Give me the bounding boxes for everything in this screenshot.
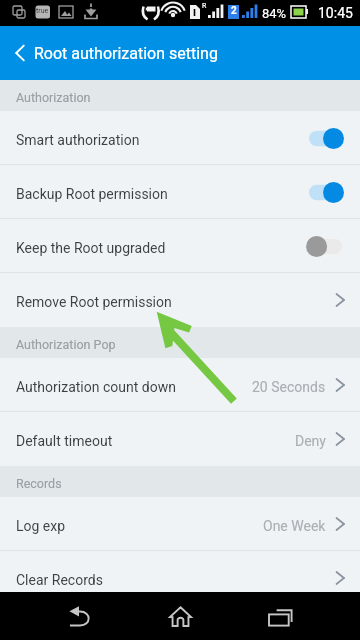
button[interactable]: Log exp [0, 497, 360, 551]
button[interactable]: Backup Root permission [0, 165, 360, 219]
staticText: 20 Seconds [252, 379, 326, 395]
staticText: true [36, 7, 49, 15]
staticText: Backup Root permission [16, 186, 168, 202]
staticText: Default timeout [16, 433, 113, 449]
staticText: Authorization Pop [16, 337, 116, 352]
button[interactable]: Recents [265, 592, 315, 640]
staticText: Log exp [16, 518, 66, 534]
staticText: 84% [262, 6, 287, 21]
staticText: Root authorization setting [34, 44, 218, 63]
staticText: Keep the Root upgraded [16, 240, 166, 256]
button[interactable]: Smart authorization [0, 111, 360, 165]
staticText: Deny [295, 433, 326, 449]
button[interactable]: Remove Root permission [0, 273, 360, 327]
button[interactable]: Home [150, 592, 210, 640]
staticText: 10:45 [318, 5, 353, 21]
button[interactable]: Back [0, 26, 34, 80]
button[interactable]: Keep the Root upgraded [0, 219, 360, 273]
staticText: R [202, 2, 207, 10]
staticText: Clear Records [16, 572, 103, 588]
button[interactable]: Authorization count down [0, 358, 360, 412]
staticText: Records [16, 476, 62, 491]
staticText: One Week [263, 518, 326, 534]
button[interactable]: Clear Records [0, 551, 360, 605]
staticText: Authorization count down [16, 379, 176, 395]
staticText: Smart authorization [16, 132, 140, 148]
staticText: Authorization [16, 90, 91, 105]
button[interactable]: Back [50, 592, 110, 640]
button[interactable]: Default timeout [0, 412, 360, 466]
staticText: 2 [231, 5, 237, 17]
staticText: Remove Root permission [16, 294, 172, 310]
